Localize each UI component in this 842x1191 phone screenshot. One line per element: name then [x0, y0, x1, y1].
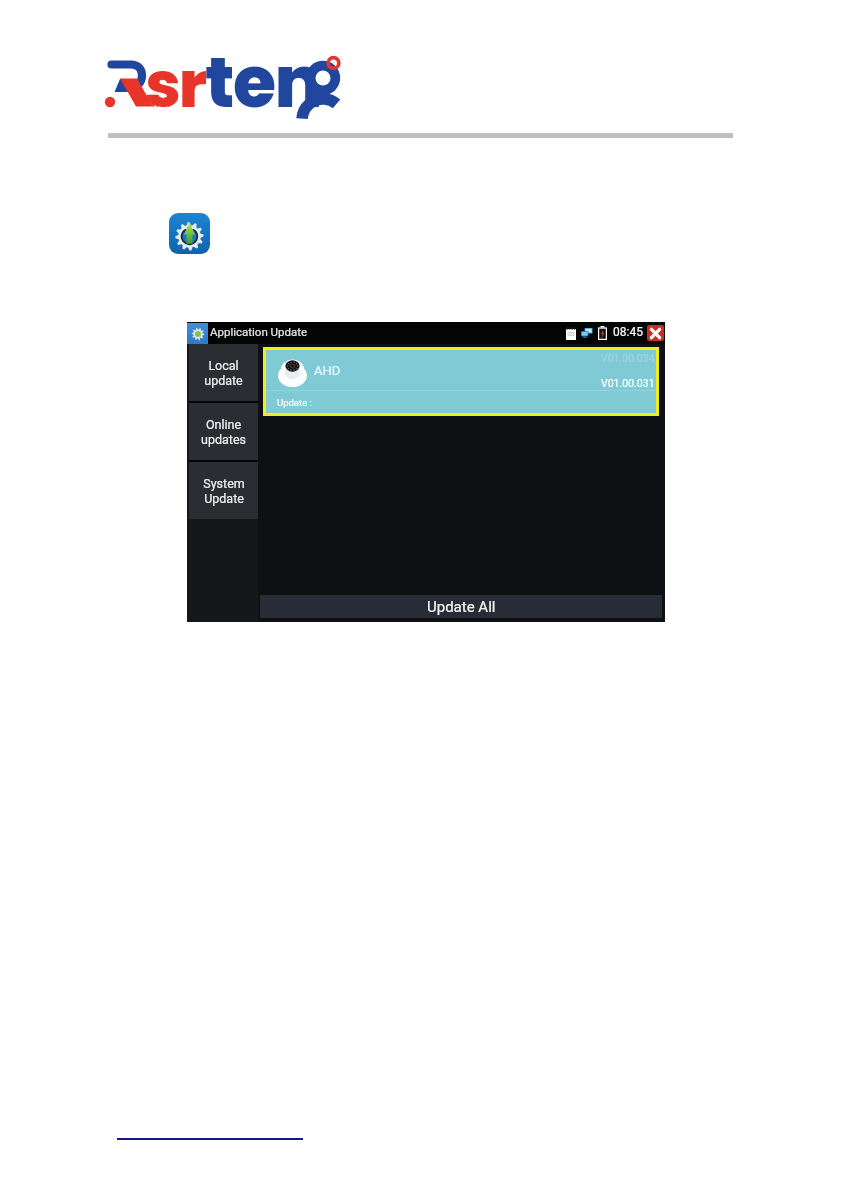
button[interactable]: AHD	[266, 350, 656, 413]
staticText: 08:45	[613, 325, 643, 339]
staticText: Online updates	[201, 417, 246, 447]
staticText: Update All	[427, 598, 496, 616]
staticText: sr	[145, 41, 205, 129]
staticText: V01.00.034	[601, 352, 655, 364]
button[interactable]: Local update	[189, 344, 258, 401]
button[interactable]: Close	[647, 325, 664, 341]
staticText: Local update	[204, 358, 243, 388]
button[interactable]: Application Update app icon	[169, 213, 210, 254]
staticText: Update :	[277, 397, 312, 408]
staticText: Application Update	[210, 325, 308, 338]
staticText: V01.00.031	[601, 377, 655, 389]
staticText: System Update	[203, 476, 245, 506]
button[interactable]: Online updates	[189, 403, 258, 460]
staticText: ten	[205, 33, 322, 123]
button[interactable]: Update All	[260, 595, 662, 618]
staticText: AHD	[314, 363, 341, 378]
button[interactable]: System Update	[189, 462, 258, 519]
